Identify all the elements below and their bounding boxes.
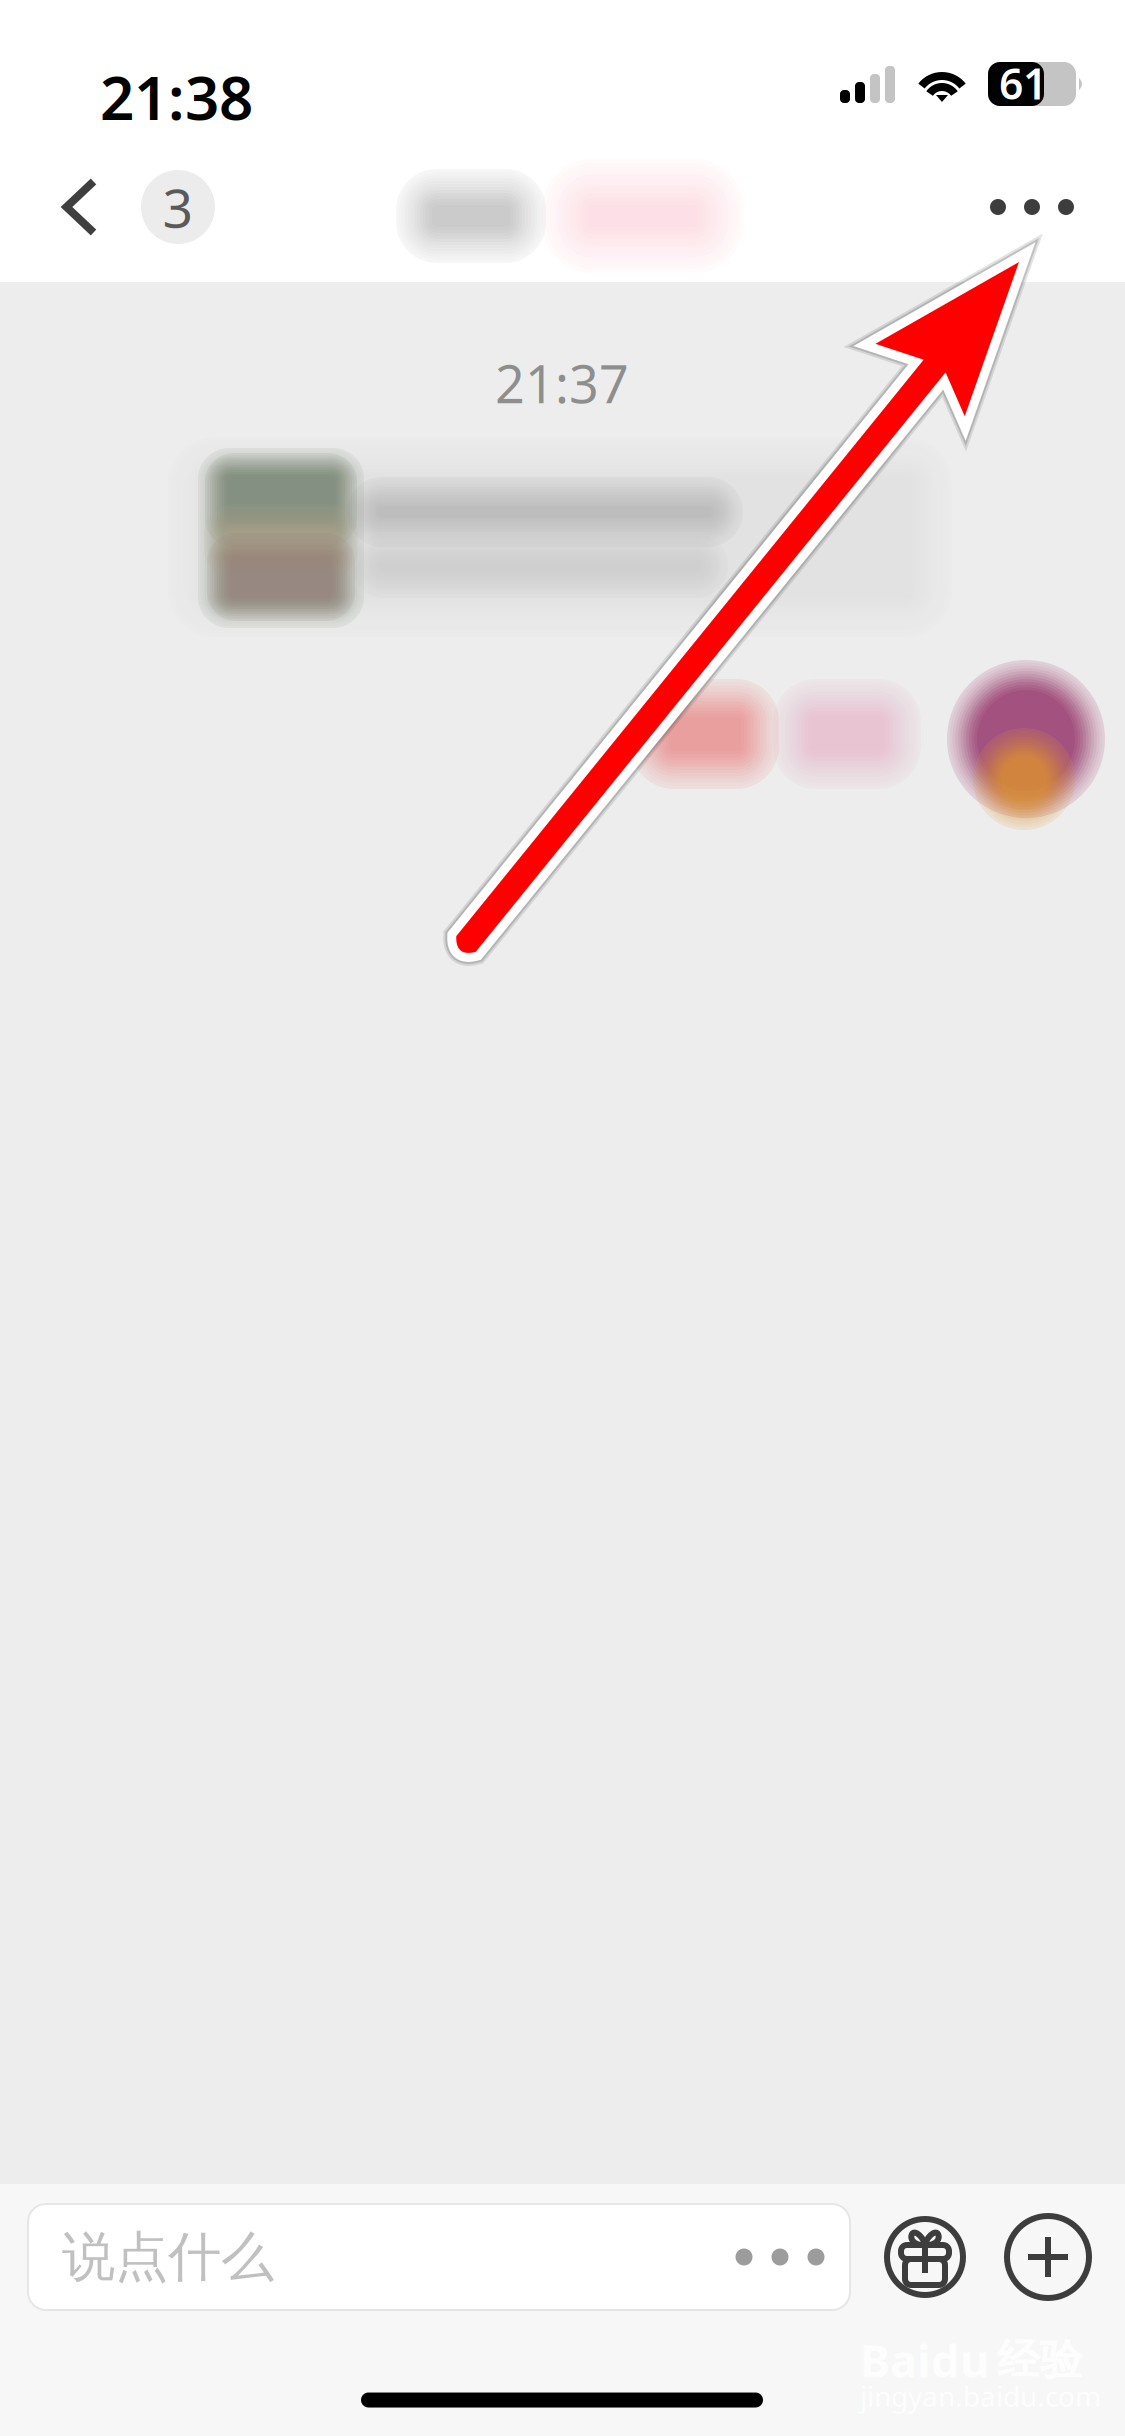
staticText: 21:38 (100, 57, 253, 137)
button[interactable]: Back (30, 151, 129, 262)
button[interactable]: 说点什么 (28, 2204, 850, 2310)
staticText: 3 (162, 172, 193, 242)
button[interactable]: 3 unread messages (141, 170, 215, 244)
staticText: 21:37 (495, 348, 629, 418)
staticText: 61 (999, 55, 1047, 111)
button[interactable]: More actions (1007, 2216, 1089, 2298)
staticText: 说点什么 (62, 2224, 274, 2290)
button[interactable]: More options (966, 159, 1098, 255)
button[interactable]: Send a gift (884, 2216, 966, 2298)
